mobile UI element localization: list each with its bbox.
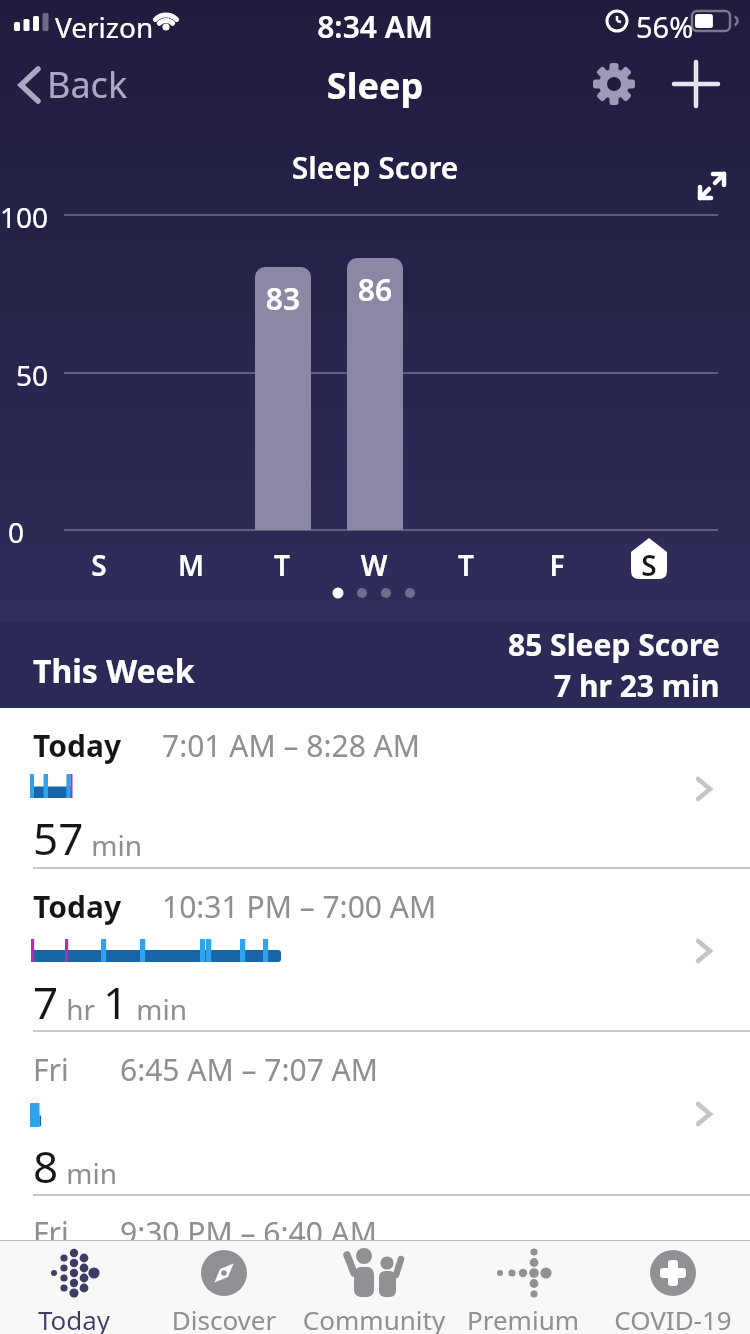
staticText: 9:30 PM – 6:40 AM (120, 1212, 377, 1253)
staticText: 7 (33, 972, 59, 1032)
staticText: Fri (33, 1049, 69, 1090)
staticText: min (84, 826, 142, 864)
staticText: 50 (0, 356, 48, 394)
staticText: Sleep (0, 61, 750, 110)
staticText: min (59, 1154, 117, 1192)
staticText: T (436, 546, 496, 584)
button[interactable]: COVID-19 (593, 1240, 750, 1334)
staticText: This Week (33, 649, 195, 693)
staticText: M (161, 546, 221, 584)
staticText: 0 (8, 513, 25, 551)
staticText: 8 (33, 1136, 59, 1196)
staticText: Today (0, 1302, 154, 1334)
staticText: 57 (33, 808, 84, 868)
staticText: 8:34 AM (0, 6, 750, 47)
staticText: 10:31 PM – 7:00 AM (162, 886, 437, 927)
staticText: 6:45 AM – 7:07 AM (120, 1049, 378, 1090)
button[interactable]: Premium (443, 1240, 603, 1334)
staticText: F (527, 546, 587, 584)
staticText: 83 (255, 278, 311, 319)
staticText: S (69, 546, 129, 584)
staticText: 100 (0, 198, 48, 236)
staticText: S (619, 546, 679, 584)
staticText: Back (47, 60, 128, 109)
staticText: 85 Sleep Score (508, 624, 720, 665)
staticText: T (252, 546, 312, 584)
staticText: 7:01 AM – 8:28 AM (162, 725, 420, 766)
button[interactable]: Community (294, 1240, 454, 1334)
button[interactable]: Today (0, 869, 750, 1032)
button[interactable]: Fri (0, 1032, 750, 1196)
staticText: Fri (33, 1212, 69, 1253)
staticText: COVID-19 (593, 1302, 750, 1334)
staticText: Sleep Score (0, 147, 750, 188)
staticText: W (344, 546, 404, 584)
button[interactable]: Today (0, 708, 750, 869)
staticText: Community (294, 1302, 454, 1334)
button[interactable]: Today (0, 1240, 154, 1334)
button[interactable] (672, 60, 720, 108)
staticText: 56% (636, 7, 694, 46)
staticText: hr (59, 990, 103, 1028)
button[interactable] (590, 60, 638, 108)
staticText: 86 (347, 269, 403, 310)
staticText: Premium (443, 1302, 603, 1334)
button[interactable]: Back (7, 60, 128, 109)
staticText: Discover (144, 1302, 304, 1334)
staticText: Verizon (55, 8, 154, 46)
staticText: Today (33, 725, 122, 766)
staticText: min (129, 990, 187, 1028)
staticText: 1 (103, 972, 129, 1032)
staticText: 7 hr 23 min (554, 665, 720, 706)
button[interactable]: Discover (144, 1240, 304, 1334)
staticText: Today (33, 886, 122, 927)
